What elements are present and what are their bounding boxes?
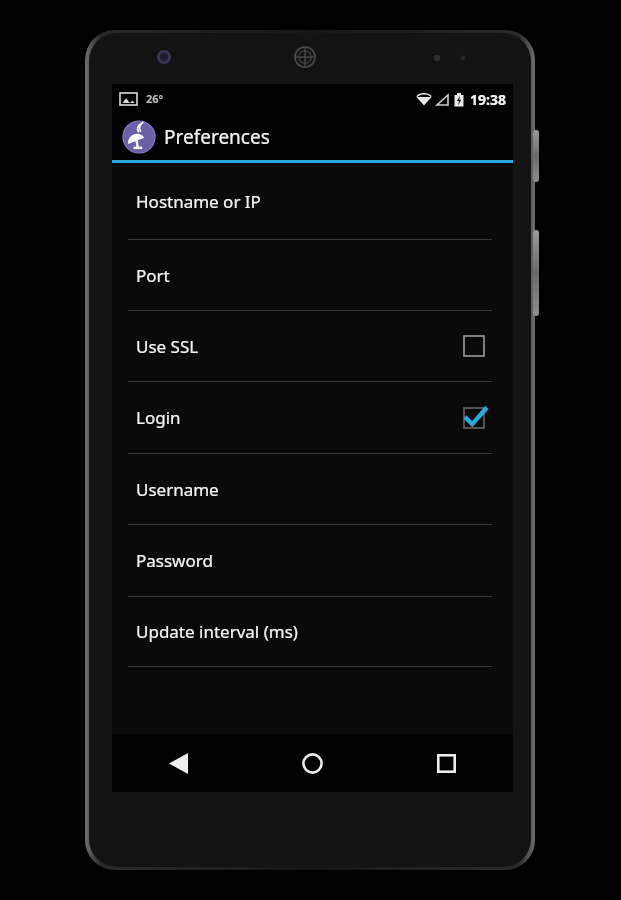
button[interactable]: Port	[112, 240, 513, 310]
staticText: Update interval (ms)	[136, 620, 491, 643]
button[interactable]: Recent apps	[379, 734, 513, 792]
staticText: 26°	[146, 91, 164, 106]
staticText: Login	[136, 406, 457, 429]
staticText: Password	[136, 549, 491, 572]
other: App icon	[123, 121, 155, 153]
button[interactable]: App icon	[112, 114, 513, 160]
button[interactable]: Back	[112, 734, 245, 792]
staticText: Hostname or IP	[136, 190, 491, 213]
button[interactable]: Username	[112, 454, 513, 524]
button[interactable]: Use SSL	[112, 311, 513, 381]
button[interactable]: Login	[112, 382, 513, 453]
button[interactable]: Update interval (ms)	[112, 597, 513, 666]
staticText: Use SSL	[136, 335, 457, 358]
staticText: Port	[136, 264, 491, 287]
button[interactable]: Login toggle	[457, 401, 491, 435]
staticText: 19:38	[470, 90, 506, 109]
button[interactable]: Use SSL toggle	[457, 329, 491, 363]
staticText: Preferences	[164, 124, 270, 150]
staticText: Username	[136, 478, 491, 501]
button[interactable]: Password	[112, 525, 513, 596]
button[interactable]: Hostname or IP	[112, 163, 513, 239]
button[interactable]: Home	[245, 734, 379, 792]
